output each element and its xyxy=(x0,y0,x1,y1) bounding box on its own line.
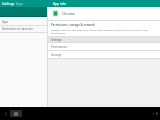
button[interactable]: Chrome xyxy=(48,7,160,20)
staticText: Apps xyxy=(16,2,24,6)
button[interactable]: Home xyxy=(10,110,22,117)
staticText: Settings xyxy=(2,2,15,6)
button[interactable]: Permissions, storage & network xyxy=(48,21,160,36)
staticText: Storage xyxy=(51,53,62,57)
staticText: Chrome xyxy=(62,11,75,16)
staticText: Apps xyxy=(2,20,9,24)
staticText: Notifications & status bar xyxy=(2,27,33,31)
staticText: Permissions xyxy=(51,45,67,49)
staticText: Manage how this app uses your device dat… xyxy=(51,28,157,34)
staticText: App info xyxy=(53,2,66,6)
button[interactable]: Apps xyxy=(0,19,47,25)
button[interactable]: Notifications & status bar xyxy=(0,26,47,32)
button[interactable]: App info xyxy=(47,0,160,7)
button[interactable]: Storage xyxy=(48,51,160,58)
button[interactable]: Settings xyxy=(0,0,47,7)
staticText: Permissions, storage & network xyxy=(51,23,95,27)
button[interactable]: Back xyxy=(1,109,10,118)
button[interactable]: Permissions xyxy=(48,43,160,50)
staticText: Settings xyxy=(51,38,62,42)
